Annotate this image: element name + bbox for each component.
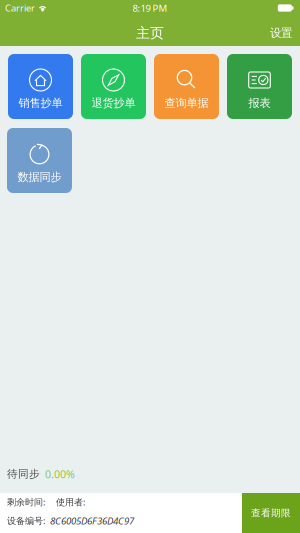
- button[interactable]: 查看期限: [242, 493, 300, 533]
- button[interactable]: 数据同步: [7, 128, 72, 193]
- staticText: 数据同步: [17, 170, 61, 184]
- button[interactable]: 退货抄单: [81, 54, 146, 119]
- button[interactable]: 设置: [262, 21, 300, 45]
- staticText: 8C6005D6F36D4C97: [50, 514, 134, 527]
- staticText: 设备编号:: [7, 514, 45, 527]
- staticText: 主页: [136, 24, 164, 42]
- staticText: 0.00%: [45, 467, 75, 481]
- staticText: Carrier: [5, 2, 35, 14]
- button[interactable]: 销售抄单: [8, 54, 73, 119]
- button[interactable]: 查询单据: [154, 54, 219, 119]
- staticText: 查询单据: [164, 96, 208, 110]
- staticText: 设置: [270, 26, 292, 40]
- staticText: 待同步: [7, 467, 40, 481]
- staticText: 使用者:: [56, 496, 85, 508]
- staticText: 退货抄单: [91, 96, 135, 110]
- staticText: 剩余时间:: [7, 496, 45, 508]
- staticText: 销售抄单: [18, 96, 62, 110]
- staticText: 8:19 PM: [132, 1, 167, 15]
- staticText: 报表: [248, 96, 270, 110]
- button[interactable]: 报表: [227, 54, 292, 119]
- staticText: 查看期限: [251, 507, 291, 519]
